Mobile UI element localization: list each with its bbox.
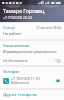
staticText: Статус <box>3 25 16 30</box>
button[interactable]: Send message <box>55 78 61 84</box>
staticText: Индивидуальные уведомления <box>3 49 57 54</box>
button[interactable]: +7 700 000 11 01 <box>0 75 64 88</box>
button[interactable]: Toggle Do Not Disturb <box>54 59 61 63</box>
staticText: Телефон <box>3 69 20 74</box>
staticText: +7 700 000 11 01 <box>11 76 41 81</box>
staticText: 12 августа 18:04 <box>36 26 61 30</box>
staticText: Уведомления <box>3 43 30 48</box>
button[interactable]: На работе <box>0 31 64 39</box>
staticText: +7 (700) 000-00-00 <box>3 15 33 20</box>
staticText: Мобильный <box>11 81 29 85</box>
staticText: Не беспокоить <box>3 58 28 63</box>
staticText: На работе <box>3 31 22 36</box>
button[interactable]: Другие телефоны <box>0 90 64 100</box>
staticText: Тамара Горовец Алекса.. <box>3 7 61 14</box>
button[interactable]: Не беспокоить <box>0 56 64 65</box>
staticText: Другие телефоны <box>3 92 37 97</box>
